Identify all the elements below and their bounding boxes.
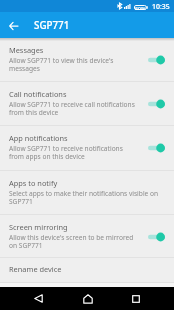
button[interactable]: Recent apps [122, 287, 149, 310]
staticText: App notifications [9, 133, 68, 143]
button[interactable]: Toggle App notifications [148, 143, 165, 153]
staticText: SGP771 [34, 19, 70, 32]
staticText: 60% [135, 5, 146, 10]
button[interactable]: Toggle Messages [148, 55, 165, 65]
staticText: Allow SGP771 to view this device's messa… [9, 56, 114, 73]
button[interactable]: Call notifications [0, 82, 174, 125]
staticText: Allow this device's screen to be mirrore… [9, 233, 134, 250]
staticText: Allow SGP771 to receive notifications fr… [9, 144, 123, 161]
staticText: Rename device [9, 264, 62, 274]
staticText: Call notifications [9, 89, 67, 99]
staticText: 10:35 [152, 2, 170, 11]
button[interactable]: Toggle Screen mirroring [148, 232, 165, 242]
button[interactable]: Screen mirroring [0, 215, 174, 257]
button[interactable]: Messages [0, 38, 174, 81]
button[interactable]: Rename device [0, 258, 174, 282]
staticText: Apps to notify [9, 178, 58, 188]
button[interactable]: Home [74, 287, 101, 310]
staticText: Screen mirroring [9, 222, 68, 232]
button[interactable]: Navigate up [4, 16, 23, 35]
button[interactable]: App notifications [0, 126, 174, 170]
staticText: Select apps to make their notifications … [9, 189, 159, 206]
staticText: Messages [9, 45, 44, 55]
staticText: Allow SGP771 to receive call notificatio… [9, 100, 135, 117]
button[interactable]: Back [25, 287, 52, 310]
button[interactable]: Toggle Call notifications [148, 99, 165, 109]
button[interactable]: Apps to notify [0, 171, 174, 214]
